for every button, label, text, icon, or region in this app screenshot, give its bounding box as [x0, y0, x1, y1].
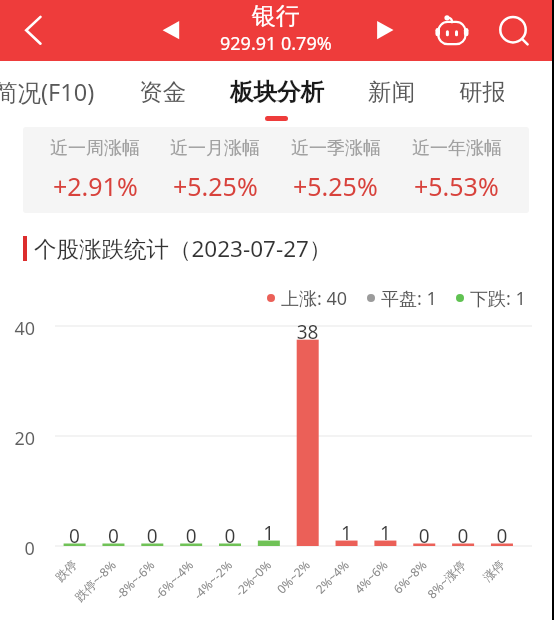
button[interactable]: AI assistant — [428, 4, 476, 52]
staticText: 银行 — [252, 1, 300, 31]
staticText: 平盘: 1 — [381, 286, 437, 310]
button[interactable]: Next sector — [367, 11, 405, 51]
button[interactable]: Search — [493, 10, 533, 50]
staticText: 上涨: 40 — [281, 286, 348, 310]
staticText: 研报 — [459, 77, 504, 107]
button[interactable]: Previous sector — [152, 11, 190, 51]
staticText: 个股涨跌统计（2023-07-27） — [34, 233, 332, 264]
button[interactable]: 下跌: 1 — [456, 286, 526, 310]
staticText: 近一季涨幅 — [291, 137, 381, 160]
staticText: 近一年涨幅 — [412, 137, 502, 160]
staticText: +5.25% — [173, 169, 258, 203]
button[interactable]: 平盘: 1 — [367, 286, 437, 310]
staticText: 下跌: 1 — [470, 286, 526, 310]
staticText: 资金 — [139, 77, 186, 107]
staticText: 板块分析 — [230, 77, 324, 107]
button[interactable]: 研报 — [437, 69, 526, 115]
button[interactable]: 新闻 — [346, 69, 437, 115]
staticText: 近一月涨幅 — [170, 137, 260, 160]
button[interactable]: 资金 — [117, 69, 208, 115]
staticText: 简况(F10) — [0, 76, 95, 108]
staticText: +5.53% — [414, 169, 499, 203]
staticText: 近一周涨幅 — [50, 137, 140, 160]
staticText: 新闻 — [368, 77, 415, 107]
staticText: +5.25% — [293, 169, 378, 203]
button[interactable]: 板块分析 — [208, 69, 346, 115]
button[interactable]: Back — [4, 6, 52, 54]
button[interactable]: 上涨: 40 — [267, 286, 348, 310]
staticText: 929.91 0.79% — [220, 31, 332, 56]
staticText: +2.91% — [53, 169, 138, 203]
button[interactable]: 简况(F10) — [0, 68, 117, 116]
